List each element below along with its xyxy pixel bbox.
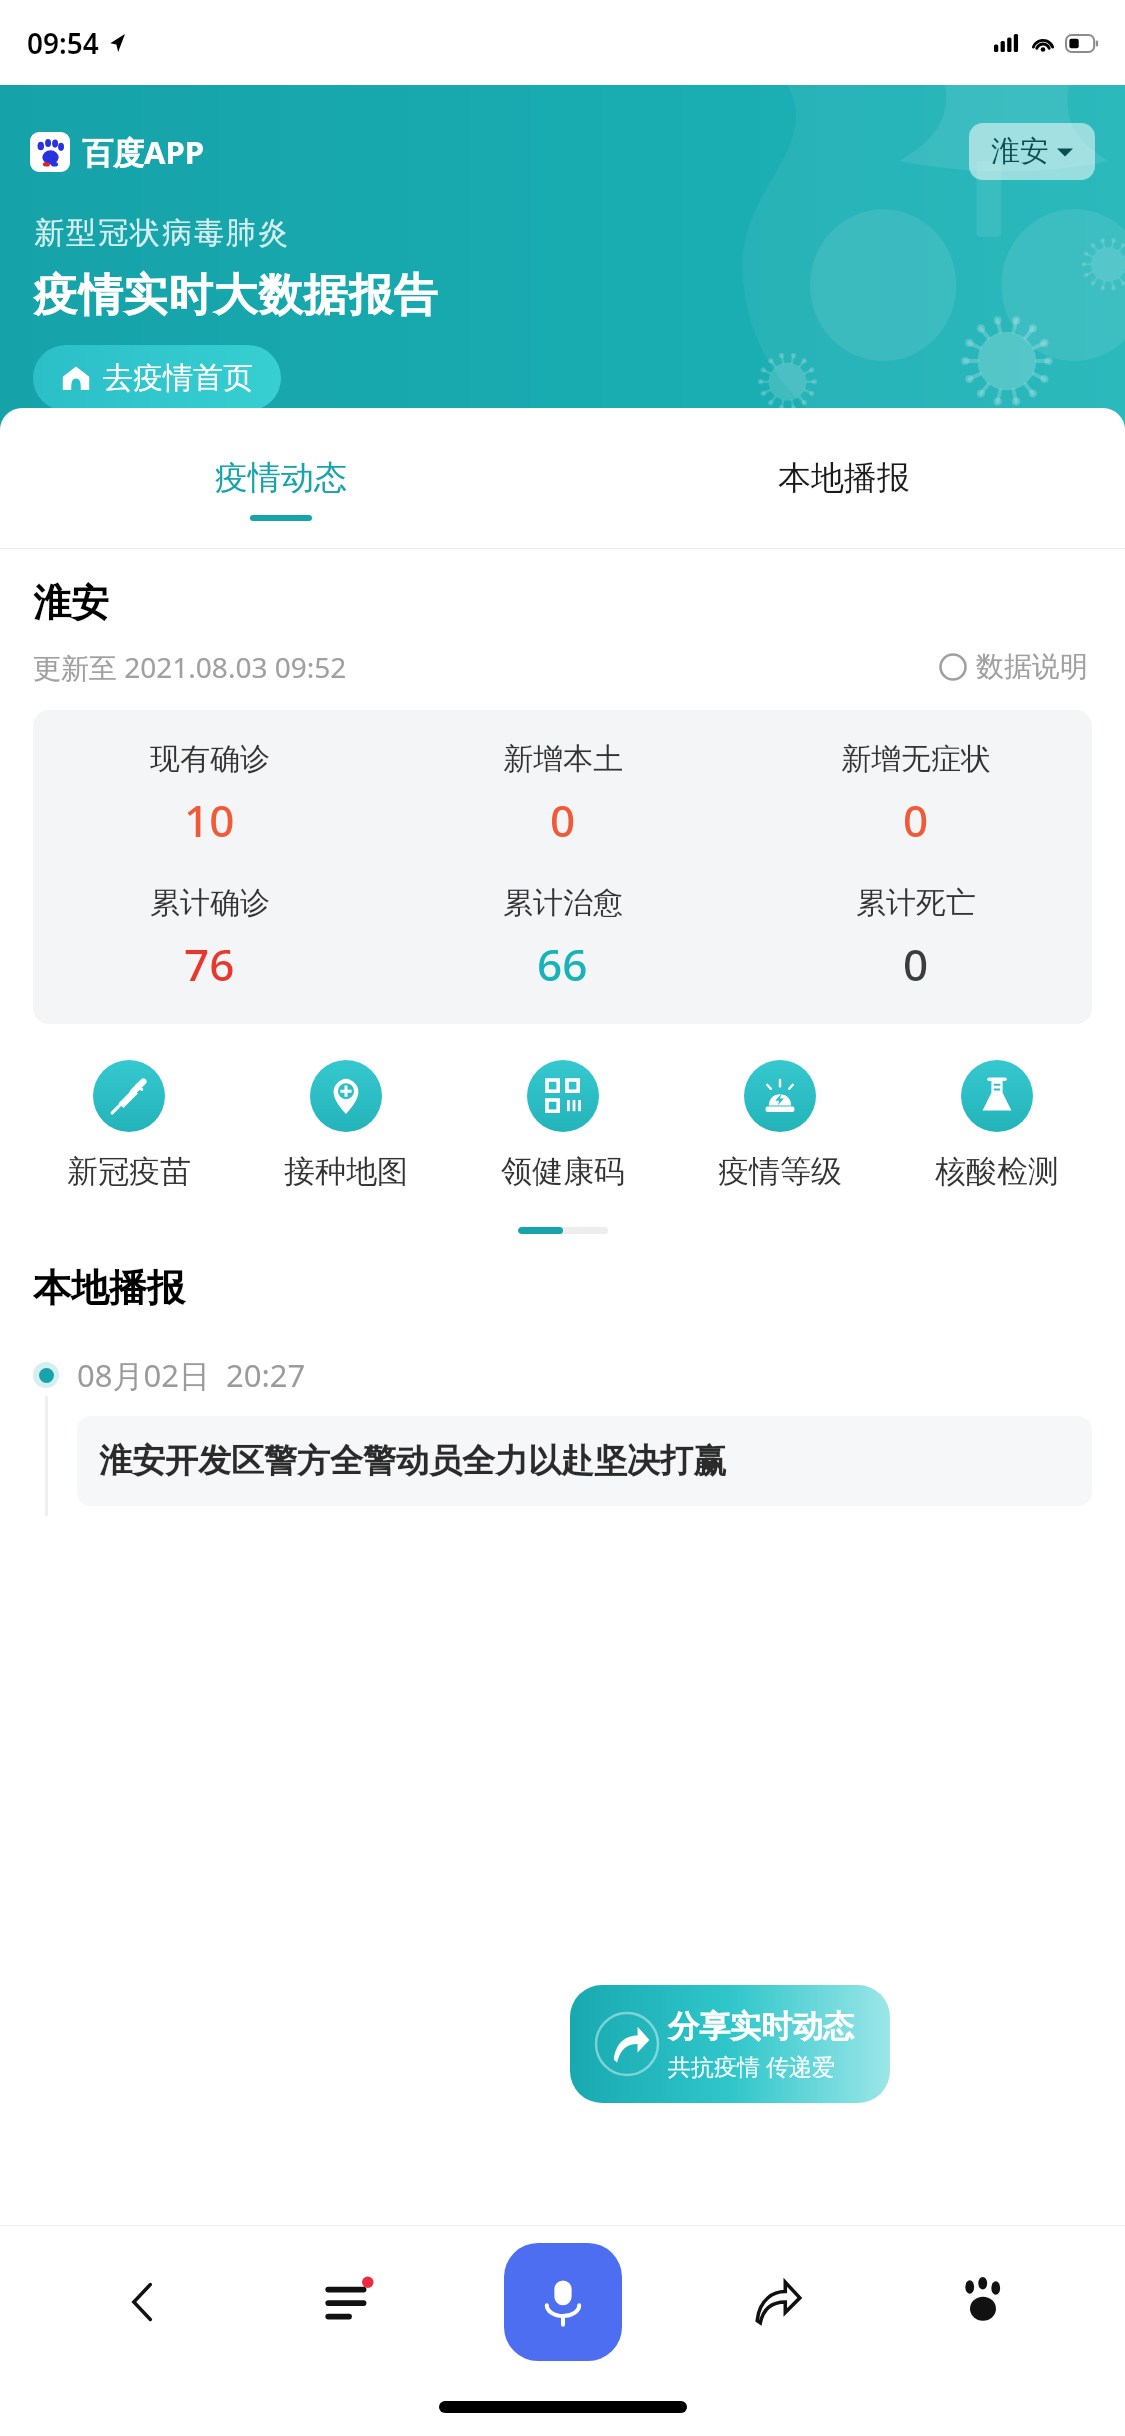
button[interactable]: 现有确诊 bbox=[33, 740, 386, 850]
button[interactable]: 百度 bbox=[880, 2226, 1085, 2378]
staticText: 本地播报 bbox=[778, 457, 910, 499]
staticText: 10 bbox=[184, 790, 235, 850]
button[interactable]: 接种地图 bbox=[237, 1060, 454, 1191]
staticText: 本地播报 bbox=[33, 1264, 185, 1312]
staticText: 09:54 bbox=[27, 24, 99, 62]
staticText: 现有确诊 bbox=[150, 740, 270, 778]
button[interactable]: 分享 bbox=[675, 2226, 880, 2378]
button[interactable]: 新增无症状 bbox=[739, 740, 1092, 850]
staticText: 累计确诊 bbox=[150, 884, 270, 922]
button[interactable]: 淮安开发区警方全警动员全力以赴坚决打赢 bbox=[77, 1416, 1092, 1506]
button[interactable]: 返回 bbox=[40, 2226, 245, 2378]
staticText: 去疫情首页 bbox=[103, 359, 253, 397]
staticText: 疫情动态 bbox=[215, 457, 347, 499]
button[interactable]: 菜单 bbox=[245, 2226, 450, 2378]
button[interactable]: 新增本土 bbox=[386, 740, 739, 850]
staticText: 淮安 bbox=[991, 133, 1049, 170]
staticText: 更新至 2021.08.03 09:52 bbox=[33, 648, 347, 686]
button[interactable]: 领健康码 bbox=[454, 1060, 671, 1191]
staticText: 0 bbox=[903, 934, 929, 994]
staticText: 疫情实时大数据报告 bbox=[33, 268, 438, 323]
button[interactable]: 淮安 bbox=[969, 123, 1095, 180]
button[interactable]: 核酸检测 bbox=[888, 1060, 1105, 1191]
staticText: 累计治愈 bbox=[503, 884, 623, 922]
staticText: 接种地图 bbox=[284, 1152, 408, 1191]
button[interactable]: 数据说明 bbox=[935, 645, 1092, 688]
staticText: 08月02日 20:27 bbox=[77, 1354, 306, 1396]
staticText: 新冠疫苗 bbox=[67, 1152, 191, 1191]
staticText: 0 bbox=[550, 790, 576, 850]
staticText: 领健康码 bbox=[501, 1152, 625, 1191]
staticText: 76 bbox=[184, 934, 235, 994]
staticText: 核酸检测 bbox=[935, 1152, 1059, 1191]
staticText: 新增无症状 bbox=[841, 740, 991, 778]
button[interactable]: 语音搜索 bbox=[450, 2226, 675, 2378]
staticText: 共抗疫情 传递爱 bbox=[668, 2050, 835, 2081]
staticText: 新型冠状病毒肺炎 bbox=[33, 214, 289, 252]
button[interactable]: 新冠疫苗 bbox=[20, 1060, 237, 1191]
staticText: 66 bbox=[537, 934, 588, 994]
staticText: 淮安 bbox=[33, 579, 109, 627]
button[interactable]: 疫情动态 bbox=[0, 430, 562, 548]
staticText: 淮安开发区警方全警动员全力以赴坚决打赢 bbox=[99, 1440, 726, 1482]
button[interactable]: 累计确诊 bbox=[33, 884, 386, 994]
staticText: 0 bbox=[903, 790, 929, 850]
staticText: 百度APP bbox=[82, 131, 204, 173]
staticText: 累计死亡 bbox=[856, 884, 976, 922]
button[interactable]: 去疫情首页 bbox=[33, 345, 281, 411]
button[interactable]: 分享实时动态 bbox=[570, 1985, 890, 2103]
staticText: 数据说明 bbox=[976, 649, 1088, 684]
staticText: 疫情等级 bbox=[718, 1152, 842, 1191]
button[interactable]: 本地播报 bbox=[562, 430, 1125, 548]
staticText: 分享实时动态 bbox=[668, 2007, 854, 2046]
staticText: 新增本土 bbox=[503, 740, 623, 778]
button[interactable]: 累计死亡 bbox=[739, 884, 1092, 994]
button[interactable]: 累计治愈 bbox=[386, 884, 739, 994]
button[interactable]: 疫情等级 bbox=[671, 1060, 888, 1191]
